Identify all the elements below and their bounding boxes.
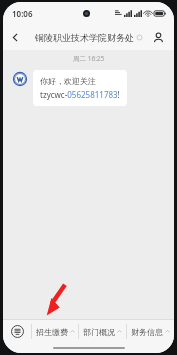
button[interactable]: Profile [148,27,168,47]
button[interactable]: 招生缴费 [32,320,78,343]
button[interactable]: 财务信息 [127,320,174,343]
staticText: tzycwc-05625811783! [40,89,120,100]
staticText: 10:06 [12,8,33,19]
staticText: 部门概况 [83,327,115,337]
button[interactable]: Back [3,25,27,49]
button[interactable]: Keyboard [3,320,31,343]
staticText: 你好，欢迎关注 [40,76,96,86]
staticText: 周二 16:25 [73,54,105,63]
staticText: 铜陵职业技术学院财务处 [35,32,134,43]
button[interactable]: 部门概况 [79,320,126,343]
staticText: 财务信息 [131,327,163,337]
button[interactable]: Account avatar [11,70,28,87]
staticText: 招生缴费 [36,327,68,337]
button[interactable]: 你好，欢迎关注 [33,70,127,106]
